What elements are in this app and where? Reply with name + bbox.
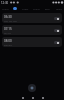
staticText: 06:30 [4,15,12,19]
button[interactable]: Add alarm [28,84,36,92]
button[interactable]: Recent apps [40,95,45,100]
button[interactable]: Bed [42,5,53,11]
staticText: Alarm [2,7,9,10]
button[interactable]: 07:15 [2,25,62,35]
staticText: Sat, Sun [4,32,11,34]
staticText: 12:30 [1,1,9,5]
button[interactable]: More [53,5,64,11]
staticText: Bed [45,7,50,10]
staticText: Timer [22,7,29,10]
button[interactable]: Toggle alarm [54,17,60,20]
button[interactable]: Alarm [0,5,10,11]
button[interactable] [10,5,20,11]
button[interactable]: Back [20,95,25,100]
staticText: 07:15 [4,27,12,31]
button[interactable]: Toggle alarm [54,29,60,32]
button[interactable]: Watch [31,5,42,11]
button[interactable]: Timer [20,5,31,11]
button[interactable]: 06:30 [2,13,62,23]
button[interactable]: 08:00 [2,37,62,47]
button[interactable]: Toggle alarm [54,41,60,44]
staticText: Every day [4,44,13,46]
staticText: Mon, Tue, Wed [4,20,17,22]
staticText: 08:00 [4,39,12,43]
button[interactable]: Home [30,95,35,100]
staticText: More [56,7,62,10]
staticText: Watch [33,7,41,10]
